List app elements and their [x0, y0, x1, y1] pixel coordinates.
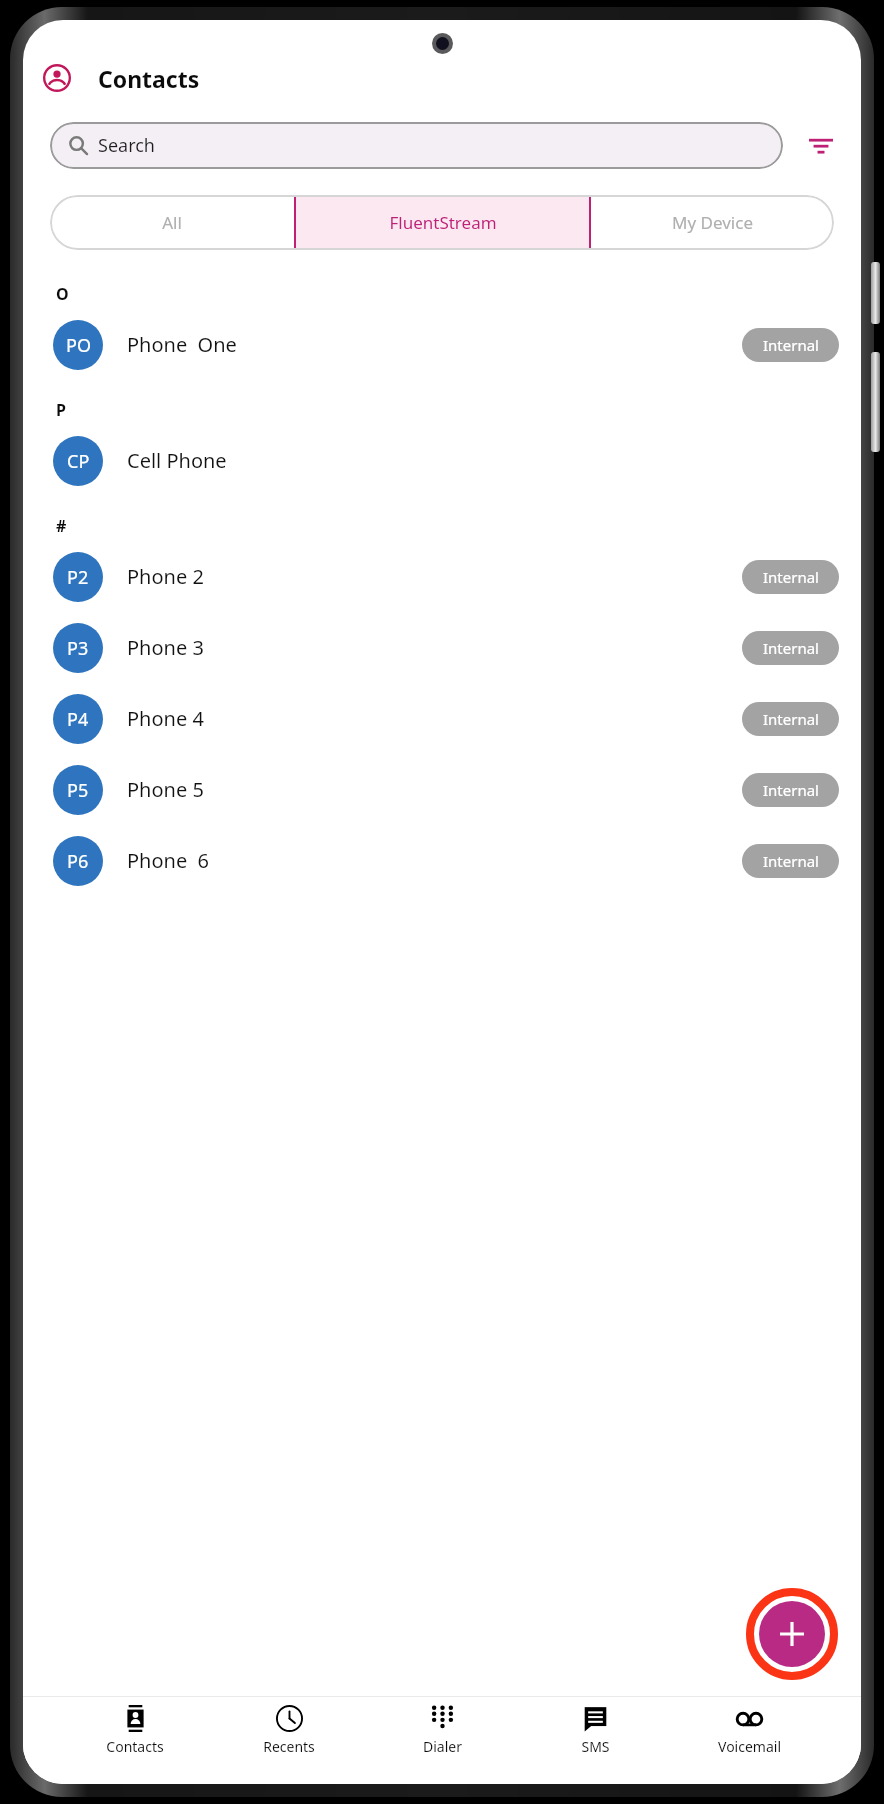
staticText: Internal: [763, 780, 819, 800]
staticText: P6: [67, 849, 89, 874]
button[interactable]: All: [50, 195, 294, 250]
button[interactable]: Recents: [248, 1697, 330, 1764]
button[interactable]: Contacts: [94, 1697, 176, 1764]
button[interactable]: CP: [23, 425, 861, 496]
staticText: CP: [67, 449, 90, 474]
button[interactable]: FluentStream: [294, 195, 591, 250]
button[interactable]: Voicemail: [708, 1697, 790, 1764]
staticText: Internal: [763, 335, 819, 355]
staticText: P2: [67, 565, 89, 590]
staticText: O: [56, 283, 69, 305]
button[interactable]: Search: [50, 122, 783, 169]
staticText: SMS: [581, 1737, 610, 1756]
staticText: Phone 5: [127, 776, 204, 803]
staticText: P3: [67, 636, 89, 661]
staticText: Voicemail: [718, 1737, 781, 1756]
staticText: Cell Phone: [127, 447, 227, 474]
staticText: P: [56, 399, 66, 421]
staticText: Phone 3: [127, 634, 204, 661]
button[interactable]: P3: [23, 612, 861, 683]
button[interactable]: P6: [23, 825, 861, 896]
button[interactable]: SMS: [554, 1697, 636, 1764]
staticText: P4: [67, 707, 89, 732]
staticText: FluentStream: [389, 211, 497, 234]
staticText: PO: [66, 333, 91, 358]
staticText: Phone 6: [127, 847, 210, 874]
staticText: Contacts: [98, 63, 200, 94]
staticText: Internal: [763, 851, 819, 871]
button[interactable]: P5: [23, 754, 861, 825]
staticText: Contacts: [106, 1737, 164, 1756]
staticText: Dialer: [423, 1737, 462, 1756]
staticText: Recents: [263, 1737, 315, 1756]
button[interactable]: My Device: [591, 195, 834, 250]
staticText: My Device: [672, 211, 753, 234]
staticText: Internal: [763, 709, 819, 729]
staticText: Phone 4: [127, 705, 204, 732]
staticText: P5: [67, 778, 89, 803]
button[interactable]: P2: [23, 541, 861, 612]
staticText: Phone One: [127, 331, 237, 358]
staticText: Internal: [763, 638, 819, 658]
button[interactable]: PO: [23, 309, 861, 380]
button[interactable]: Filter: [801, 126, 841, 166]
button[interactable]: P4: [23, 683, 861, 754]
staticText: Search: [98, 133, 155, 158]
button[interactable]: Add contact: [759, 1601, 825, 1667]
staticText: #: [56, 515, 67, 537]
staticText: Phone 2: [127, 563, 204, 590]
button[interactable]: Account: [39, 60, 75, 96]
staticText: Internal: [763, 567, 819, 587]
staticText: All: [162, 211, 182, 234]
button[interactable]: Dialer: [401, 1697, 483, 1764]
